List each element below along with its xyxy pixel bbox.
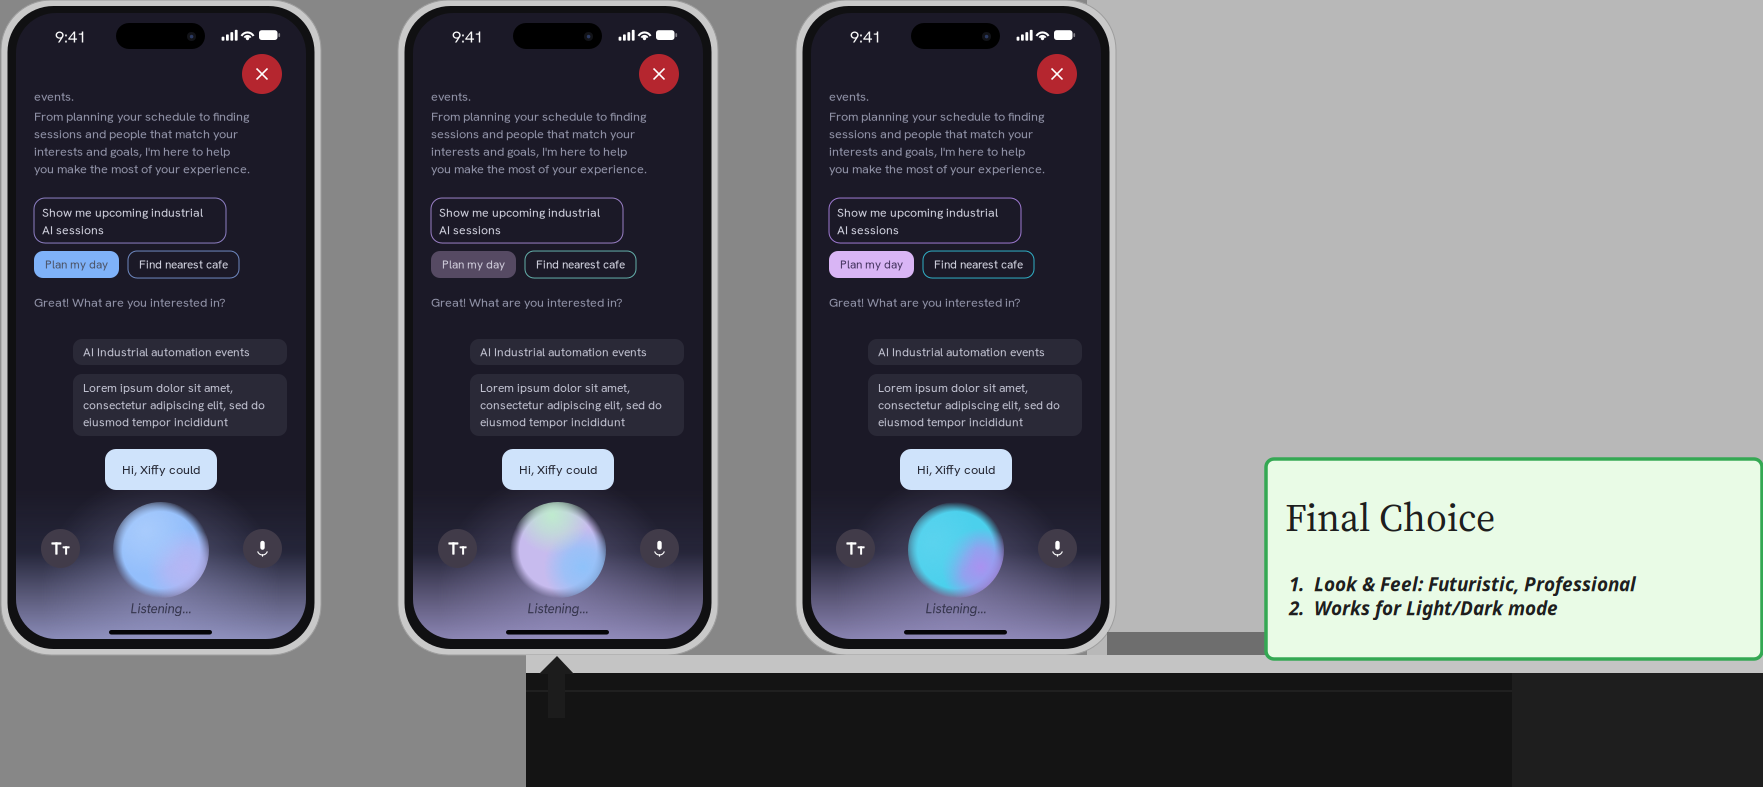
button[interactable]: Microphone bbox=[1038, 529, 1077, 568]
button[interactable]: Find nearest cafe bbox=[923, 251, 1034, 278]
staticText: Great! What are you interested in? bbox=[431, 294, 623, 310]
staticText: Find nearest cafe bbox=[934, 257, 1023, 272]
staticText: Lorem ipsum dolor sit amet, consectetur … bbox=[878, 380, 1060, 430]
staticText: Find nearest cafe bbox=[536, 257, 625, 272]
staticText: 9:41 bbox=[452, 26, 483, 47]
button[interactable]: Text size bbox=[41, 529, 80, 568]
staticText: Listening... bbox=[527, 600, 588, 617]
staticText: Final Choice bbox=[1285, 491, 1495, 544]
staticText: Hi, Xiffy could bbox=[917, 461, 995, 478]
staticText: AI Industrial automation events bbox=[480, 344, 647, 360]
staticText: Great! What are you interested in? bbox=[829, 294, 1021, 310]
staticText: Listening... bbox=[130, 600, 191, 617]
staticText: Show me upcoming industrial AI sessions bbox=[837, 204, 998, 238]
staticText: Lorem ipsum dolor sit amet, consectetur … bbox=[480, 380, 662, 430]
staticText: 2. Works for Light/Dark mode bbox=[1289, 595, 1558, 621]
button[interactable]: Close bbox=[242, 54, 282, 94]
button[interactable]: Plan my day bbox=[829, 251, 914, 278]
staticText: From planning your schedule to finding s… bbox=[34, 108, 250, 177]
staticText: Lorem ipsum dolor sit amet, consectetur … bbox=[83, 380, 265, 430]
button[interactable]: Plan my day bbox=[34, 251, 119, 278]
button[interactable]: Close bbox=[1037, 54, 1077, 94]
button[interactable]: Show me upcoming industrial AI sessions bbox=[829, 198, 1021, 243]
button[interactable]: Text size bbox=[438, 529, 477, 568]
staticText: Plan my day bbox=[45, 257, 108, 272]
button[interactable]: Find nearest cafe bbox=[128, 251, 239, 278]
staticText: events. bbox=[829, 88, 869, 104]
button[interactable]: Close bbox=[639, 54, 679, 94]
staticText: 9:41 bbox=[850, 26, 881, 47]
staticText: Show me upcoming industrial AI sessions bbox=[42, 204, 203, 238]
staticText: Listening... bbox=[925, 600, 986, 617]
staticText: Hi, Xiffy could bbox=[122, 461, 200, 478]
staticText: 1. Look & Feel: Futuristic, Professional bbox=[1289, 571, 1636, 597]
button[interactable]: Plan my day bbox=[431, 251, 516, 278]
button[interactable]: Microphone bbox=[640, 529, 679, 568]
staticText: From planning your schedule to finding s… bbox=[431, 108, 647, 177]
staticText: 9:41 bbox=[55, 26, 86, 47]
button[interactable]: Text size bbox=[836, 529, 875, 568]
staticText: Find nearest cafe bbox=[139, 257, 228, 272]
staticText: AI Industrial automation events bbox=[83, 344, 250, 360]
button[interactable]: Find nearest cafe bbox=[525, 251, 636, 278]
staticText: Plan my day bbox=[442, 257, 505, 272]
staticText: events. bbox=[34, 88, 74, 104]
button[interactable]: Microphone bbox=[243, 529, 282, 568]
staticText: Plan my day bbox=[840, 257, 903, 272]
staticText: From planning your schedule to finding s… bbox=[829, 108, 1045, 177]
staticText: events. bbox=[431, 88, 471, 104]
staticText: AI Industrial automation events bbox=[878, 344, 1045, 360]
staticText: Show me upcoming industrial AI sessions bbox=[439, 204, 600, 238]
staticText: Hi, Xiffy could bbox=[519, 461, 597, 478]
button[interactable]: Show me upcoming industrial AI sessions bbox=[431, 198, 623, 243]
staticText: Great! What are you interested in? bbox=[34, 294, 226, 310]
button[interactable]: Show me upcoming industrial AI sessions bbox=[34, 198, 226, 243]
